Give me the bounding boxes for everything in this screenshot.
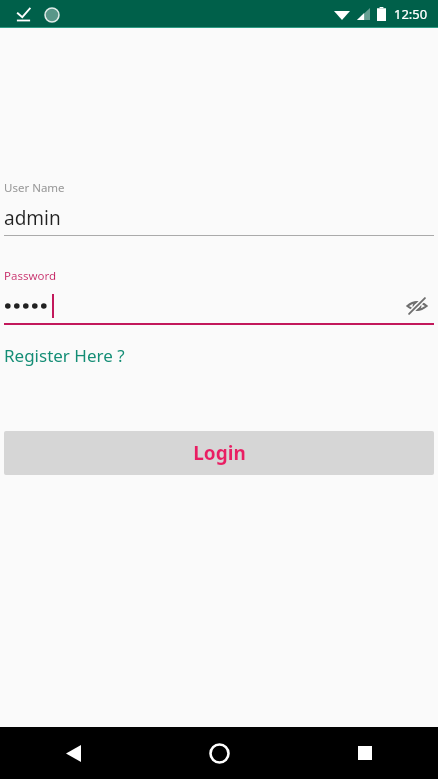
staticText: 12:50 — [394, 5, 428, 23]
button[interactable]: Home — [146, 727, 292, 779]
button[interactable]: Register Here ? — [4, 342, 125, 369]
staticText: Password — [4, 268, 57, 284]
staticText: admin — [4, 205, 61, 231]
staticText: User Name — [4, 180, 65, 196]
staticText: Login — [193, 440, 246, 466]
button[interactable]: Login — [4, 431, 434, 475]
button[interactable]: Back — [0, 727, 146, 779]
button[interactable]: Recent apps — [292, 727, 438, 779]
staticText: Register Here ? — [4, 344, 125, 367]
button[interactable]: Hide password — [400, 292, 434, 320]
button[interactable]: Hide password — [4, 292, 434, 320]
button[interactable]: admin — [4, 204, 434, 232]
